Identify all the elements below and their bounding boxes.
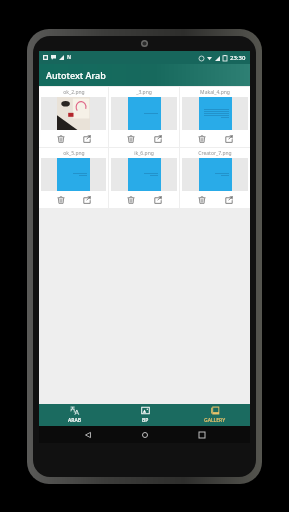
staticText: ARAB xyxy=(68,417,81,424)
staticText: N xyxy=(67,54,72,61)
button[interactable]: Delete xyxy=(54,132,67,145)
staticText: 23:30 xyxy=(230,54,246,62)
button[interactable]: Delete xyxy=(54,193,67,206)
button[interactable]: Share xyxy=(80,132,93,145)
button[interactable]: ARAB xyxy=(39,404,110,426)
button[interactable]: Back xyxy=(79,426,96,443)
button[interactable]: Creator_7.png xyxy=(180,148,250,208)
button[interactable]: Delete xyxy=(124,193,137,206)
button[interactable]: Delete xyxy=(195,132,208,145)
staticText: BP xyxy=(142,417,149,424)
button[interactable]: Share xyxy=(151,132,164,145)
button[interactable]: Delete xyxy=(195,193,208,206)
button[interactable]: Recent apps xyxy=(193,426,210,443)
staticText: ok_2.png xyxy=(63,89,85,96)
button[interactable]: Share xyxy=(222,193,235,206)
staticText: ok_5.png xyxy=(63,150,85,157)
button[interactable]: Share xyxy=(80,193,93,206)
button[interactable]: Delete xyxy=(124,132,137,145)
button[interactable]: ok_5.png xyxy=(39,148,108,208)
staticText: Creator_7.png xyxy=(198,150,232,157)
button[interactable]: Share xyxy=(222,132,235,145)
button[interactable]: Home xyxy=(136,426,153,443)
staticText: GALLERY xyxy=(204,417,226,424)
button[interactable]: Makal_4.png xyxy=(180,87,250,147)
button[interactable]: BP xyxy=(110,404,180,426)
button[interactable]: _3.png xyxy=(109,87,179,147)
button[interactable]: ik_6.png xyxy=(109,148,179,208)
button[interactable]: GALLERY xyxy=(180,404,250,426)
staticText: Autotext Arab xyxy=(46,69,106,81)
staticText: ik_6.png xyxy=(134,150,154,157)
staticText: _3.png xyxy=(136,89,152,96)
button[interactable]: Share xyxy=(151,193,164,206)
staticText: Makal_4.png xyxy=(200,89,230,96)
button[interactable]: ok_2.png xyxy=(39,87,108,147)
